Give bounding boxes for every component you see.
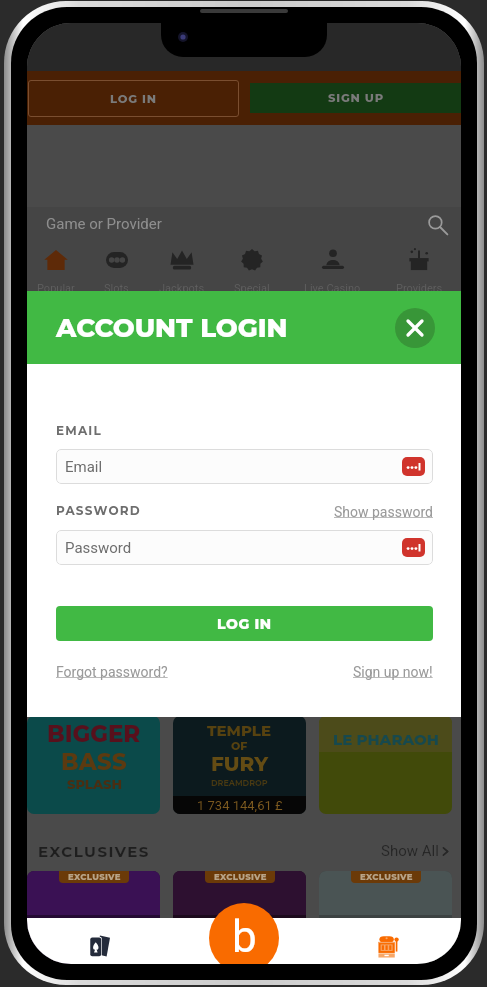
button[interactable]: Jackpots [148, 241, 216, 293]
staticText: BIGGER [47, 720, 141, 748]
staticText: SIGN UP [328, 91, 384, 105]
button[interactable]: EXCLUSIVE [319, 871, 452, 964]
button[interactable]: LE PHARAOH [319, 716, 452, 814]
staticText: b [232, 911, 257, 963]
staticText: SPLASH [67, 776, 122, 792]
button[interactable]: Slots [85, 241, 148, 293]
staticText: LE PHARAOH [333, 730, 439, 748]
staticText: Email [65, 458, 103, 476]
button[interactable]: SIGN UP [250, 83, 461, 113]
button[interactable]: EXCLUSIVE [27, 871, 160, 964]
button[interactable]: Close [395, 308, 435, 348]
button[interactable]: Show All [381, 842, 452, 860]
button[interactable]: TEMPLE [173, 716, 306, 814]
button[interactable]: Live Casino [288, 241, 377, 293]
staticText: Slots [104, 282, 129, 293]
button[interactable]: Sign up now! [353, 664, 433, 680]
staticText: BASS [61, 748, 127, 776]
staticText: EXCLUSIVE [214, 872, 267, 882]
button[interactable]: Password [56, 530, 433, 565]
button[interactable]: Popular [27, 241, 85, 293]
staticText: Forgot password? [56, 664, 168, 680]
staticText: Popular [37, 282, 75, 293]
staticText: EXCLUSIVES [38, 842, 150, 860]
button[interactable]: LOG IN [56, 606, 433, 641]
staticText: Show password [334, 504, 433, 520]
button[interactable]: Home [209, 903, 279, 964]
staticText: Special [234, 282, 270, 293]
button[interactable]: Providers [377, 241, 461, 293]
staticText: TEMPLE [207, 721, 272, 739]
staticText: LIVE CASINO [67, 961, 132, 964]
staticText: Sign up now! [353, 664, 433, 680]
staticText: FURY [211, 752, 269, 776]
staticText: Jackpots [159, 282, 205, 293]
staticText: EXCLUSIVE [360, 872, 413, 882]
staticText: DREAMDROP [211, 778, 268, 788]
staticText: EMAIL [56, 423, 102, 438]
button[interactable]: Forgot password? [56, 664, 168, 680]
staticText: OF [231, 739, 248, 752]
staticText: Live Casino [304, 282, 361, 293]
staticText: Providers [396, 282, 443, 293]
staticText: Password [65, 539, 132, 557]
staticText: EXCLUSIVE [68, 872, 121, 882]
staticText: LOG IN [217, 615, 272, 632]
staticText: Game or Provider [46, 215, 162, 233]
staticText: ACCOUNT LOGIN [56, 312, 288, 344]
staticText: 1 734 144,61 £ [197, 798, 283, 813]
staticText: LOG IN [110, 92, 157, 106]
button[interactable]: BIGGER [27, 716, 160, 814]
button[interactable]: Show password [334, 504, 433, 520]
button[interactable]: EXCLUSIVE [173, 871, 306, 964]
button[interactable]: LOG IN [28, 80, 239, 117]
staticText: PASSWORD [56, 503, 141, 518]
button[interactable]: Live Casino [27, 918, 171, 964]
staticText: Show All [381, 842, 439, 860]
button[interactable]: Email [56, 449, 433, 484]
button[interactable]: Slots [316, 918, 461, 964]
button[interactable]: Special [216, 241, 288, 293]
